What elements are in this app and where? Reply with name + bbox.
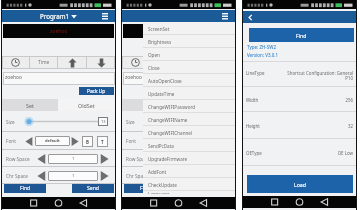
button[interactable]: OEType (243, 139, 356, 166)
button[interactable]: 1 (168, 154, 218, 164)
button[interactable]: AutoOpenClose (143, 74, 235, 87)
button[interactable]: Increase Row Space (220, 153, 229, 165)
button[interactable]: Height (243, 112, 356, 139)
button[interactable]: Previous font (145, 136, 153, 147)
staticText: Brightness (148, 39, 172, 45)
button[interactable]: Size slider (144, 116, 218, 127)
button[interactable]: Menu (99, 10, 111, 22)
button[interactable]: Decrease Chr Space (37, 170, 46, 182)
button[interactable]: Move down (87, 56, 115, 69)
button[interactable]: Decrease Row Space (157, 153, 166, 165)
button[interactable]: ScreenSet (143, 22, 235, 35)
button[interactable]: Send (192, 184, 234, 193)
staticText: Shortcut Configuration: General P10 (287, 70, 353, 82)
staticText: 1 (192, 173, 195, 179)
staticText: Send (207, 185, 219, 192)
button[interactable]: default (155, 136, 190, 146)
button[interactable]: Set (122, 99, 178, 111)
staticText: Load (294, 181, 306, 188)
staticText: Size (126, 119, 135, 125)
staticText: Find (140, 185, 151, 192)
button[interactable]: SendPcData (143, 139, 235, 152)
staticText: zoehoo (50, 28, 68, 35)
button[interactable]: 1 (48, 154, 98, 164)
button[interactable]: T (97, 136, 108, 147)
staticText: OldSet (78, 102, 95, 109)
button[interactable]: Find (249, 28, 354, 42)
staticText: Font (126, 138, 136, 144)
button[interactable]: 1 (168, 171, 218, 181)
button[interactable]: B (82, 136, 93, 147)
button[interactable]: Close (143, 61, 235, 74)
button[interactable]: Clock (2, 56, 29, 69)
staticText: Row Space (126, 156, 150, 162)
button[interactable]: Language (143, 191, 235, 194)
staticText: 13 (101, 119, 106, 125)
button[interactable]: OldSet (178, 99, 235, 111)
staticText: 1 (72, 156, 75, 162)
button[interactable]: Send (72, 184, 114, 193)
button[interactable]: Move up (178, 56, 206, 69)
button[interactable]: Clock (122, 56, 149, 69)
button[interactable]: Increase Chr Space (100, 170, 109, 182)
button[interactable]: Size slider (24, 116, 98, 127)
staticText: Open (148, 52, 160, 58)
button[interactable]: Open (143, 48, 235, 61)
staticText: ScreenSet (148, 26, 170, 32)
button[interactable]: Move up (58, 56, 86, 69)
button[interactable]: T (217, 136, 228, 147)
button[interactable]: B (202, 136, 213, 147)
button[interactable]: Back (245, 12, 255, 22)
button[interactable]: Increase Chr Space (220, 170, 229, 182)
button[interactable]: Load (247, 175, 353, 193)
button[interactable]: ChangeWIFIPassword (143, 100, 235, 113)
button[interactable]: Width (243, 87, 356, 112)
button[interactable]: 1 (48, 171, 98, 181)
button[interactable]: Time (150, 56, 177, 69)
button[interactable]: OldSet (58, 99, 115, 111)
button[interactable]: Menu (219, 10, 231, 22)
staticText: zoehoo (5, 74, 22, 81)
button[interactable]: Find (124, 184, 166, 193)
button[interactable]: Increase Row Space (100, 153, 109, 165)
staticText: Close (148, 65, 160, 71)
staticText: 32 (347, 123, 353, 129)
button[interactable]: CheckUpdate (143, 178, 235, 191)
staticText: AutoOpenClose (148, 78, 182, 84)
button[interactable]: ChangeWIFIChannel (143, 126, 235, 139)
staticText: Find (296, 32, 307, 39)
button[interactable]: default (35, 136, 70, 146)
button[interactable]: Brightness (143, 35, 235, 48)
button[interactable]: UpgradeFirmware (143, 152, 235, 165)
staticText: Version: V3.0.1 (247, 52, 279, 58)
button[interactable]: Decrease Chr Space (157, 170, 166, 182)
staticText: Set (26, 102, 34, 109)
button[interactable]: ChangeWIFIName (143, 113, 235, 126)
staticText: Width (246, 97, 259, 103)
button[interactable]: Previous font (25, 136, 33, 147)
button[interactable]: AddFont (143, 165, 235, 178)
button[interactable]: UpdateTime (143, 87, 235, 100)
button[interactable]: LineType (243, 62, 356, 87)
staticText: Row Space (6, 156, 30, 162)
button[interactable]: Time (30, 56, 57, 69)
button[interactable]: Pack Up (79, 87, 114, 95)
staticText: Time (158, 59, 170, 66)
button[interactable]: Set (2, 99, 58, 111)
staticText: Time (38, 59, 50, 66)
button[interactable]: Move down (207, 56, 235, 69)
staticText: 1 (72, 173, 75, 179)
staticText: default (165, 138, 180, 144)
staticText: CheckUpdate (148, 182, 177, 188)
staticText: Height (246, 123, 260, 129)
button[interactable]: Decrease Row Space (37, 153, 46, 165)
button[interactable]: Next font (191, 136, 199, 147)
staticText: 256 (345, 97, 353, 103)
button[interactable]: Next font (71, 136, 79, 147)
button[interactable]: Find (4, 184, 46, 193)
